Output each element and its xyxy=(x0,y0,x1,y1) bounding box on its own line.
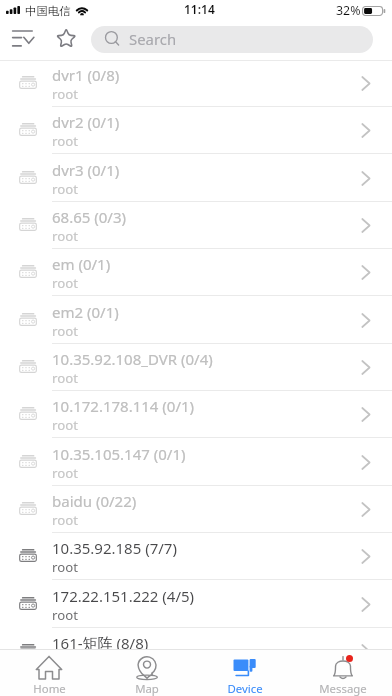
button[interactable]: 10.35.105.147 (0/1) xyxy=(0,439,392,486)
staticText: Device xyxy=(227,681,263,696)
staticText: root xyxy=(52,322,78,340)
staticText: root xyxy=(52,369,78,387)
staticText: 10.35.92.185 (7/7) xyxy=(52,538,177,558)
staticText: root xyxy=(52,416,78,434)
staticText: root xyxy=(52,606,78,624)
button[interactable]: Sort xyxy=(0,21,46,59)
staticText: 68.65 (0/3) xyxy=(52,207,126,227)
button[interactable]: em2 (0/1) xyxy=(0,297,392,344)
button[interactable]: Home xyxy=(0,650,98,696)
button[interactable]: dvr1 (0/8) xyxy=(0,60,392,107)
staticText: 10.35.92.108_DVR (0/4) xyxy=(52,349,213,369)
staticText: em (0/1) xyxy=(52,254,111,274)
button[interactable]: 172.22.151.222 (4/5) xyxy=(0,581,392,628)
staticText: em2 (0/1) xyxy=(52,302,119,322)
staticText: root xyxy=(52,85,78,103)
staticText: root xyxy=(52,511,78,529)
staticText: Home xyxy=(33,681,66,696)
button[interactable]: dvr2 (0/1) xyxy=(0,107,392,154)
button[interactable]: Map xyxy=(98,650,196,696)
button[interactable]: 68.65 (0/3) xyxy=(0,202,392,249)
staticText: 32% xyxy=(336,2,361,19)
staticText: 中国电信 xyxy=(25,4,71,18)
staticText: 10.172.178.114 (0/1) xyxy=(52,396,195,416)
staticText: 161-矩阵 (8/8) xyxy=(52,633,149,649)
button[interactable]: Favorites xyxy=(46,21,88,59)
staticText: root xyxy=(52,558,78,576)
staticText: Search xyxy=(129,29,177,49)
staticText: root xyxy=(52,227,78,245)
button[interactable]: Device xyxy=(196,650,294,696)
button[interactable]: 10.172.178.114 (0/1) xyxy=(0,391,392,438)
button[interactable]: em (0/1) xyxy=(0,249,392,296)
staticText: dvr2 (0/1) xyxy=(52,112,120,132)
staticText: Map xyxy=(135,681,159,696)
staticText: Message xyxy=(319,681,367,696)
button[interactable]: Search xyxy=(91,26,373,53)
staticText: root xyxy=(52,274,78,292)
staticText: dvr1 (0/8) xyxy=(52,65,120,85)
button[interactable]: 10.35.92.108_DVR (0/4) xyxy=(0,344,392,391)
staticText: 172.22.151.222 (4/5) xyxy=(52,586,195,606)
button[interactable]: Message xyxy=(294,650,392,696)
button[interactable]: 10.35.92.185 (7/7) xyxy=(0,533,392,580)
staticText: root xyxy=(52,132,78,150)
button[interactable]: dvr3 (0/1) xyxy=(0,155,392,202)
staticText: root xyxy=(52,180,78,198)
staticText: baidu (0/22) xyxy=(52,491,137,511)
staticText: 11:14 xyxy=(184,1,215,17)
staticText: 10.35.105.147 (0/1) xyxy=(52,444,186,464)
staticText: dvr3 (0/1) xyxy=(52,160,120,180)
button[interactable]: baidu (0/22) xyxy=(0,486,392,533)
staticText: root xyxy=(52,464,78,482)
button[interactable]: 161-矩阵 (8/8) xyxy=(0,628,392,649)
